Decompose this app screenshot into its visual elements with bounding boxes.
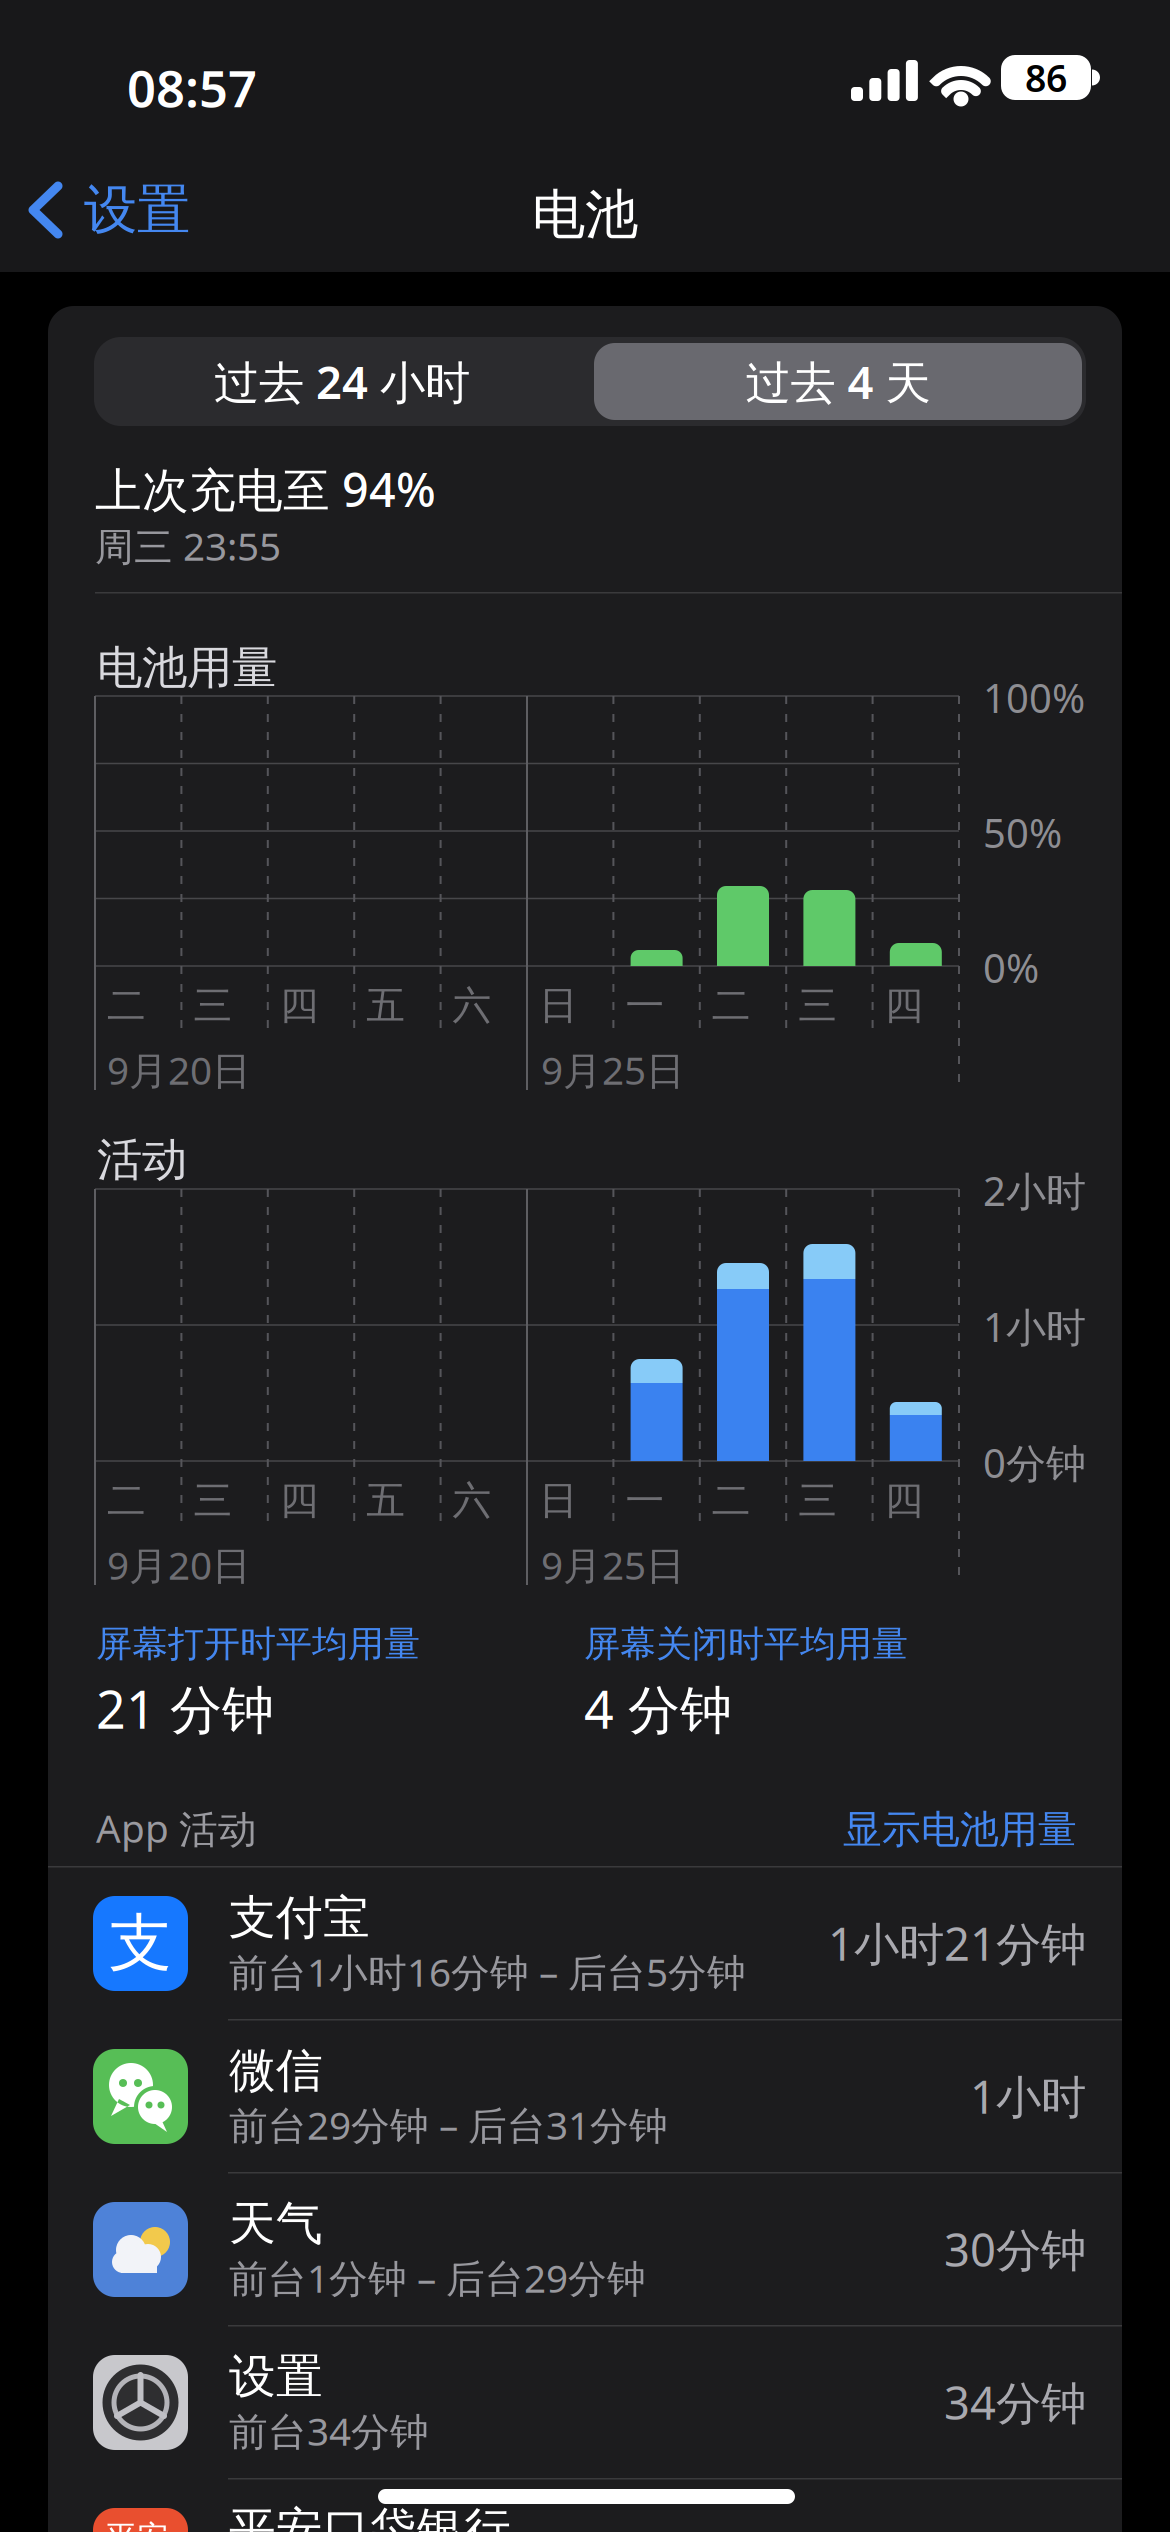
staticText: 六	[453, 982, 492, 1029]
button[interactable]: 支付宝	[48, 1867, 1122, 2019]
staticText: 六	[453, 1477, 492, 1524]
button[interactable]: 过去 4 天	[594, 343, 1082, 420]
staticText: 9月25日	[541, 1539, 685, 1590]
staticText: 设置	[229, 2348, 323, 2405]
staticText: 9月20日	[107, 1044, 251, 1095]
staticText: 四	[280, 982, 319, 1029]
staticText: 三	[798, 1477, 837, 1524]
staticText: 微信	[229, 2042, 323, 2099]
staticText: 五	[366, 982, 405, 1029]
staticText: 设置	[84, 177, 190, 243]
staticText: 四	[280, 1477, 319, 1524]
button[interactable]: 设置	[28, 180, 190, 240]
staticText: 支	[109, 1905, 172, 1982]
staticText: 过去 24 小时	[214, 351, 470, 412]
staticText: 四	[885, 1477, 924, 1524]
staticText: 上次充电至 94%	[95, 458, 436, 520]
staticText: 100%	[983, 671, 1085, 724]
staticText: 前台1分钟 – 后台29分钟	[229, 2252, 646, 2303]
staticText: 21 分钟	[96, 1674, 274, 1743]
button[interactable]: 天气	[48, 2173, 1122, 2325]
staticText: 一	[625, 982, 664, 1029]
staticText: 电池	[532, 182, 638, 247]
staticText: 1小时21分钟	[828, 1913, 1086, 1973]
button[interactable]: 平安口袋银行	[48, 2479, 1122, 2532]
staticText: 前台34分钟	[229, 2405, 429, 2456]
staticText: 五	[366, 1477, 405, 1524]
staticText: 86	[1025, 53, 1067, 102]
button[interactable]: 显示电池用量	[577, 1806, 1077, 1853]
staticText: 平安口袋银行	[229, 2501, 511, 2532]
staticText: 三	[798, 982, 837, 1029]
staticText: 支付宝	[229, 1889, 370, 1946]
staticText: 三	[193, 982, 232, 1029]
staticText: 1小时	[983, 1300, 1086, 1353]
staticText: 日	[539, 982, 578, 1029]
staticText: 4 分钟	[584, 1674, 732, 1743]
button[interactable]: 过去 24 小时	[94, 337, 590, 426]
staticText: 前台29分钟 – 后台31分钟	[229, 2099, 668, 2150]
button[interactable]: 微信	[48, 2020, 1122, 2172]
staticText: 二	[712, 982, 751, 1029]
staticText: 屏幕关闭时平均用量	[584, 1622, 908, 1666]
staticText: 过去 4 天	[745, 351, 930, 412]
staticText: 30分钟	[944, 2219, 1086, 2279]
staticText: 08:57	[127, 54, 257, 121]
staticText: 1小时	[970, 2066, 1086, 2126]
button[interactable]: 设置	[48, 2326, 1122, 2478]
staticText: 周三 23:55	[95, 520, 281, 571]
staticText: 二	[712, 1477, 751, 1524]
staticText: 9月20日	[107, 1539, 251, 1590]
staticText: 0分钟	[983, 1436, 1086, 1489]
staticText: 2小时	[983, 1164, 1086, 1217]
staticText: 电池用量	[97, 640, 277, 696]
staticText: 四	[885, 982, 924, 1029]
staticText: 0%	[983, 941, 1039, 994]
staticText: 三	[193, 1477, 232, 1524]
staticText: 9月25日	[541, 1044, 685, 1095]
staticText: 一	[625, 1477, 664, 1524]
staticText: 34分钟	[944, 2372, 1086, 2432]
staticText: 活动	[97, 1132, 187, 1188]
staticText: 二	[107, 1477, 146, 1524]
staticText: 前台1小时16分钟 – 后台5分钟	[229, 1946, 746, 1997]
staticText: 屏幕打开时平均用量	[96, 1622, 420, 1666]
staticText: 天气	[229, 2195, 323, 2252]
staticText: 二	[107, 982, 146, 1029]
staticText: 50%	[983, 806, 1062, 859]
staticText: 日	[539, 1477, 578, 1524]
staticText: 显示电池用量	[843, 1806, 1077, 1853]
staticText: 平安	[105, 2518, 169, 2532]
staticText: App 活动	[96, 1802, 257, 1853]
